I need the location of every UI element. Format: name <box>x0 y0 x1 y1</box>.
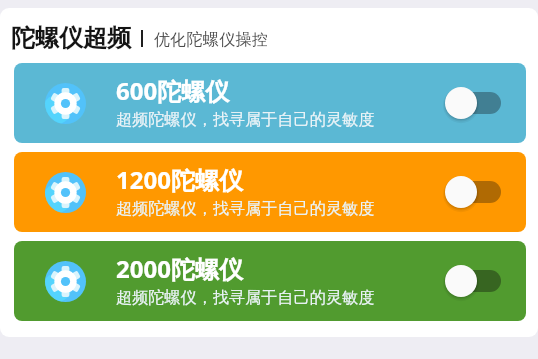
button[interactable]: Toggle <box>445 174 501 210</box>
staticText: 陀螺仪超频 <box>11 23 131 53</box>
staticText: 超频陀螺仪，找寻属于自己的灵敏度 <box>116 288 375 308</box>
button[interactable]: 1200陀螺仪 <box>14 152 526 232</box>
staticText: 超频陀螺仪，找寻属于自己的灵敏度 <box>116 110 375 130</box>
staticText: 600陀螺仪 <box>116 74 230 107</box>
staticText: 超频陀螺仪，找寻属于自己的灵敏度 <box>116 199 375 219</box>
button[interactable]: Toggle <box>445 85 501 121</box>
staticText: 优化陀螺仪操控 <box>154 30 269 50</box>
staticText: 1200陀螺仪 <box>116 163 243 196</box>
button[interactable]: Toggle <box>445 263 501 299</box>
button[interactable]: 2000陀螺仪 <box>14 241 526 321</box>
staticText: 2000陀螺仪 <box>116 252 243 285</box>
button[interactable]: 600陀螺仪 <box>14 63 526 143</box>
